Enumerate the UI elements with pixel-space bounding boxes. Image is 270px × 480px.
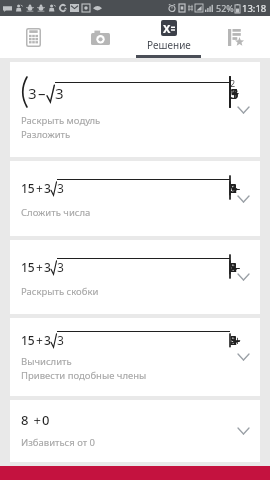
staticText: +: [36, 259, 43, 275]
button[interactable]: Bookmarks: [202, 16, 270, 58]
button[interactable]: Calculator: [0, 16, 67, 58]
staticText: Разложить: [21, 128, 71, 141]
button[interactable]: Expand step: [233, 189, 253, 209]
staticText: Сложить числа: [21, 206, 91, 219]
button[interactable]: Expand step: [233, 421, 253, 441]
staticText: 3: [57, 180, 64, 196]
staticText: 0: [42, 411, 50, 429]
staticText: 3: [44, 332, 51, 348]
staticText: 3: [28, 83, 37, 103]
staticText: Вычислить: [21, 355, 72, 368]
staticText: 3: [44, 259, 51, 275]
staticText: Раскрыть скобки: [21, 285, 99, 298]
staticText: +: [30, 411, 41, 429]
staticText: Избавиться от 0: [21, 436, 96, 449]
button[interactable]: Camera: [67, 16, 134, 58]
button[interactable]: Expand step: [233, 100, 253, 120]
staticText: Раскрыть модуль: [21, 114, 101, 127]
button[interactable]: Expand step: [233, 267, 253, 287]
button[interactable]: Expand step: [233, 347, 253, 367]
staticText: Решение: [147, 38, 191, 52]
staticText: X: [163, 21, 171, 36]
staticText: 3: [57, 259, 64, 275]
button[interactable]: 15: [10, 318, 260, 396]
staticText: 15: [21, 259, 35, 275]
staticText: +: [36, 180, 43, 196]
staticText: 52%: [216, 2, 234, 14]
button[interactable]: X: [134, 16, 202, 58]
button[interactable]: 15: [10, 240, 260, 314]
staticText: 3: [44, 180, 51, 196]
button[interactable]: 15: [10, 161, 260, 236]
staticText: 13:18: [242, 2, 267, 15]
staticText: 3: [57, 332, 64, 348]
button[interactable]: 3: [10, 62, 260, 157]
staticText: 3: [55, 83, 64, 103]
button[interactable]: 8: [10, 400, 260, 462]
staticText: Привести подобные члены: [21, 369, 147, 382]
staticText: 15: [21, 180, 35, 196]
staticText: 15: [21, 332, 35, 348]
staticText: 8: [21, 411, 29, 429]
staticText: +: [36, 332, 43, 348]
staticText: –: [38, 83, 46, 103]
